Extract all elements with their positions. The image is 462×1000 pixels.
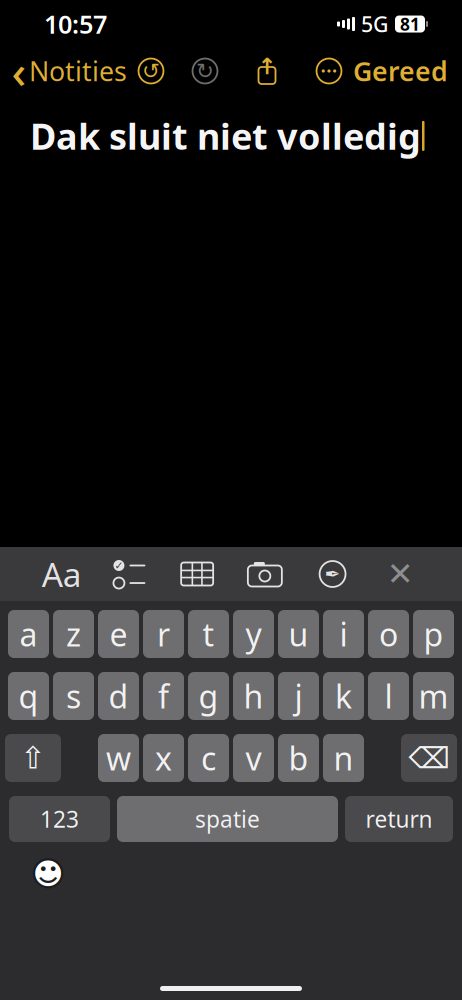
button[interactable]: Close keyboard — [380, 557, 420, 591]
button[interactable]: ‹ — [12, 47, 127, 95]
staticText: x — [155, 737, 172, 779]
staticText: ↻ — [196, 59, 214, 83]
staticText: Aa — [42, 552, 82, 596]
staticText: 5G — [361, 10, 389, 38]
button[interactable]: spatie — [117, 796, 338, 842]
staticText: ✓ — [114, 559, 123, 571]
button[interactable]: Emoji — [28, 854, 68, 894]
button[interactable]: u — [278, 610, 319, 658]
staticText: a — [19, 613, 37, 655]
button[interactable]: v — [233, 734, 274, 782]
staticText: q — [18, 675, 38, 717]
staticText: l — [384, 675, 392, 717]
button[interactable]: d — [98, 672, 139, 720]
staticText: p — [423, 613, 443, 655]
button[interactable]: Undo — [136, 56, 166, 86]
button[interactable]: l — [368, 672, 409, 720]
staticText: z — [66, 613, 81, 655]
staticText: ‹ — [11, 41, 26, 101]
button[interactable]: Gereed — [353, 47, 448, 95]
staticText: ⇧ — [20, 741, 46, 775]
staticText: ⌫ — [408, 741, 449, 775]
staticText: u — [288, 613, 308, 655]
button[interactable]: Redo — [190, 56, 220, 86]
button[interactable]: Format — [42, 557, 82, 591]
staticText: 10:57 — [44, 7, 107, 41]
staticText: v — [245, 737, 261, 779]
button[interactable]: n — [323, 734, 364, 782]
button[interactable]: Delete — [401, 734, 457, 782]
staticText: ☺ — [30, 854, 66, 894]
button[interactable]: y — [233, 610, 274, 658]
staticText: h — [243, 675, 263, 717]
button[interactable]: 123 — [9, 796, 110, 842]
staticText: o — [379, 613, 398, 655]
staticText: f — [158, 675, 169, 717]
button[interactable]: h — [233, 672, 274, 720]
button[interactable]: return — [345, 796, 453, 842]
button[interactable]: s — [53, 672, 94, 720]
staticText: Notities — [29, 53, 127, 89]
button[interactable]: q — [8, 672, 49, 720]
staticText: n — [333, 737, 353, 779]
button[interactable]: x — [143, 734, 184, 782]
staticText: m — [418, 675, 448, 717]
button[interactable]: a — [8, 610, 49, 658]
button[interactable]: Share — [252, 56, 282, 86]
staticText: e — [109, 613, 127, 655]
staticText: s — [66, 675, 81, 717]
staticText: ↑ — [257, 54, 276, 79]
staticText: b — [288, 737, 308, 779]
button[interactable]: Shift — [5, 734, 61, 782]
button[interactable]: o — [368, 610, 409, 658]
button[interactable]: Checklist — [109, 557, 149, 591]
staticText: r — [157, 613, 170, 655]
button[interactable]: More — [314, 56, 344, 86]
button[interactable]: Camera — [245, 557, 285, 591]
button[interactable]: w — [98, 734, 139, 782]
button[interactable]: Table — [177, 557, 217, 591]
staticText: w — [106, 737, 131, 779]
staticText: Gereed — [353, 53, 448, 89]
button[interactable]: f — [143, 672, 184, 720]
staticText: spatie — [195, 804, 260, 834]
staticText: c — [201, 737, 216, 779]
button[interactable]: t — [188, 610, 229, 658]
button[interactable]: Markup — [313, 557, 353, 591]
staticText: ✒ — [325, 563, 341, 585]
button[interactable]: m — [413, 672, 454, 720]
staticText: return — [365, 804, 432, 834]
button[interactable]: k — [323, 672, 364, 720]
button[interactable]: j — [278, 672, 319, 720]
staticText: d — [108, 675, 128, 717]
staticText: Dak sluit niet volledig — [30, 112, 421, 160]
button[interactable]: r — [143, 610, 184, 658]
button[interactable]: i — [323, 610, 364, 658]
staticText: ✕ — [387, 556, 414, 592]
button[interactable]: g — [188, 672, 229, 720]
button[interactable]: b — [278, 734, 319, 782]
staticText: i — [339, 613, 347, 655]
staticText: g — [198, 675, 218, 717]
staticText: y — [245, 613, 261, 655]
staticText: t — [202, 613, 214, 655]
button[interactable]: e — [98, 610, 139, 658]
button[interactable]: p — [413, 610, 454, 658]
button[interactable]: z — [53, 610, 94, 658]
staticText: 123 — [40, 804, 79, 834]
staticText: 81 — [400, 12, 420, 35]
staticText: k — [335, 675, 352, 717]
staticText: ↺ — [142, 59, 160, 83]
staticText: j — [294, 675, 302, 717]
button[interactable]: c — [188, 734, 229, 782]
